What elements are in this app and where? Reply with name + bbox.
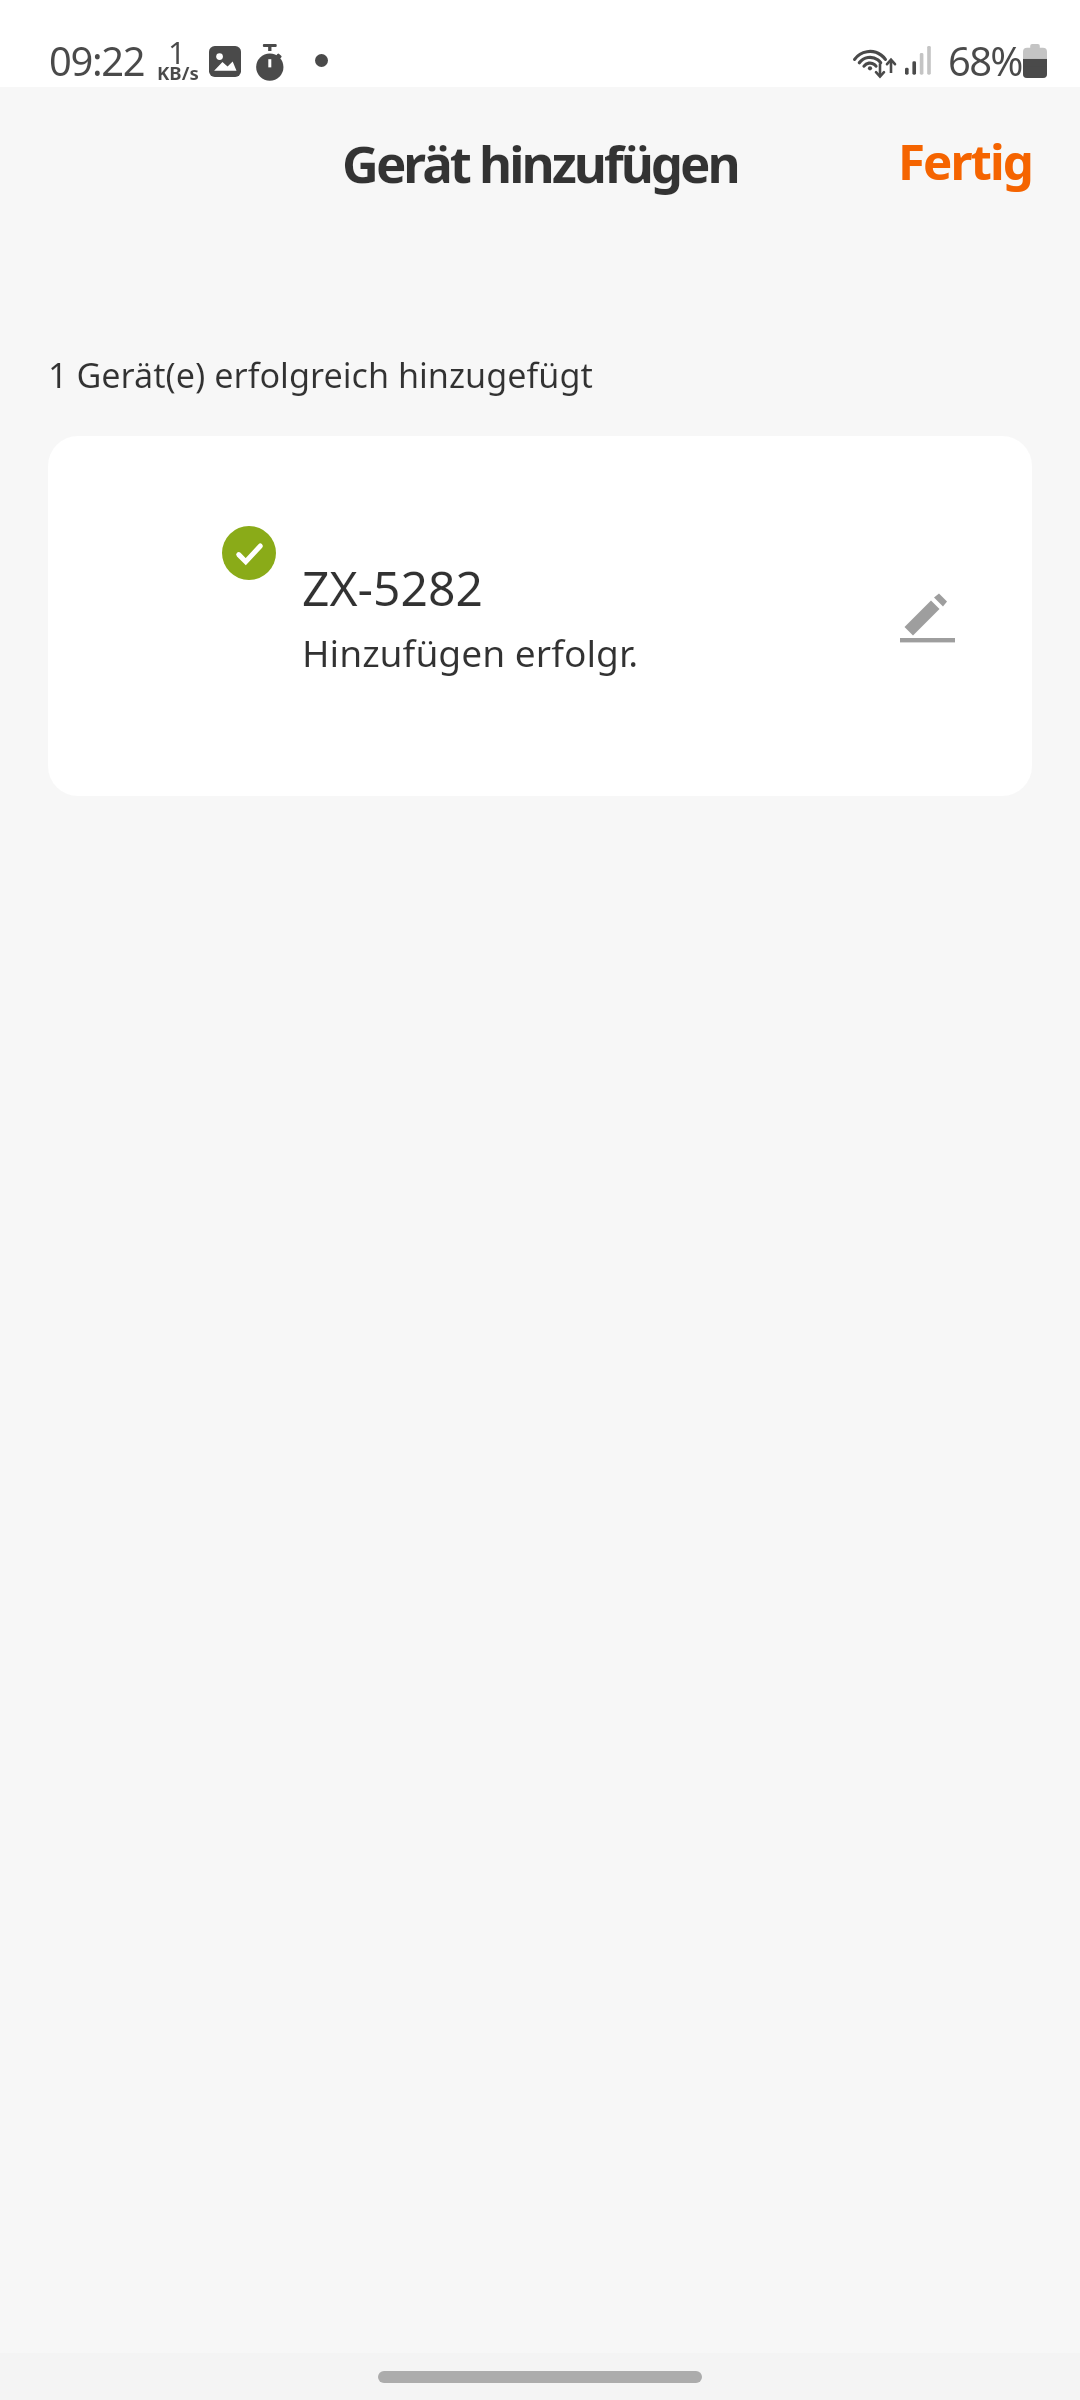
staticText: Hinzufügen erfolgr. xyxy=(302,627,639,678)
staticText: 1 Gerät(e) erfolgreich hinzugefügt xyxy=(48,351,593,398)
staticText: Gerät hinzufügen xyxy=(342,128,738,197)
staticText: 1 xyxy=(168,31,186,73)
button[interactable]: ZX-5282 xyxy=(48,436,1032,796)
staticText: KB/s xyxy=(157,60,199,85)
staticText: 09:22 xyxy=(49,33,145,87)
button[interactable]: Bearbeiten xyxy=(892,580,966,650)
button[interactable]: Fertig xyxy=(850,109,1080,212)
staticText: ZX-5282 xyxy=(302,555,483,620)
staticText: Fertig xyxy=(898,127,1032,194)
staticText: 68% xyxy=(948,33,1022,87)
